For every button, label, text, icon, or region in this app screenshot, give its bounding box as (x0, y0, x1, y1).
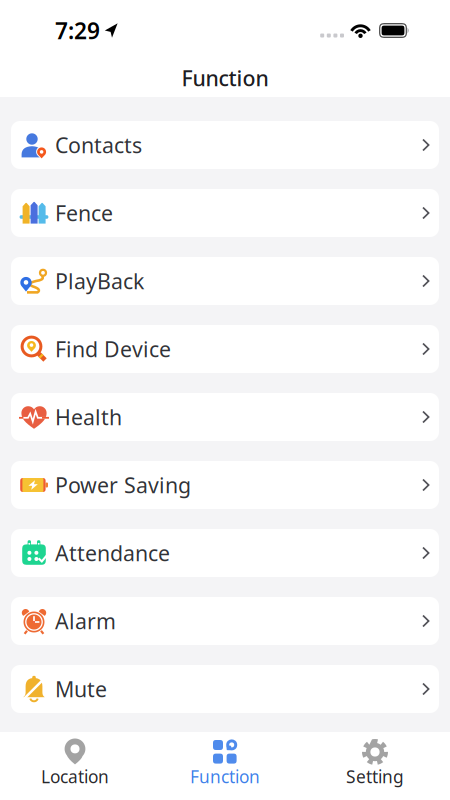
button[interactable]: Fence (11, 189, 439, 237)
button[interactable]: Find Device (11, 325, 439, 373)
button[interactable]: Location (0, 732, 150, 800)
button[interactable]: Attendance (11, 529, 439, 577)
button[interactable]: Health (11, 393, 439, 441)
button[interactable]: Alarm (11, 597, 439, 645)
button[interactable]: Contacts (11, 121, 439, 169)
staticText: Function (181, 64, 268, 92)
button[interactable]: Setting (300, 732, 450, 800)
staticText: Attendance (55, 539, 170, 567)
staticText: Mute (55, 675, 107, 703)
button[interactable]: Mute (11, 665, 439, 713)
staticText: Location (41, 765, 109, 788)
staticText: PlayBack (55, 267, 144, 295)
staticText: Function (190, 765, 260, 788)
staticText: Contacts (55, 131, 142, 159)
staticText: Power Saving (55, 471, 191, 499)
staticText: Setting (346, 765, 404, 788)
staticText: Health (55, 403, 122, 431)
staticText: Fence (55, 199, 113, 227)
button[interactable]: Function (150, 732, 300, 800)
button[interactable]: PlayBack (11, 257, 439, 305)
staticText: Alarm (55, 607, 116, 635)
button[interactable]: Power Saving (11, 461, 439, 509)
staticText: 7:29 (55, 15, 100, 45)
staticText: Find Device (55, 335, 171, 363)
